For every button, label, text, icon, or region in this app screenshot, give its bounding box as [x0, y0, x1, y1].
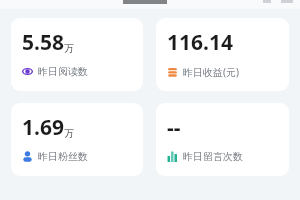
other: 留言次数	[167, 151, 178, 162]
staticText: 昨日粉丝数	[38, 150, 88, 163]
button[interactable]: 5.58	[11, 18, 143, 91]
other: 收益	[167, 67, 178, 78]
staticText: 昨日阅读数	[38, 65, 88, 78]
button[interactable]: --	[156, 103, 289, 176]
staticText: 万	[64, 42, 74, 55]
button[interactable]: 116.14	[156, 18, 289, 91]
other: 粉丝数	[22, 151, 33, 162]
staticText: 昨日留言次数	[183, 150, 243, 163]
other: 阅读数	[22, 66, 33, 77]
staticText: 5.58	[22, 28, 64, 57]
button[interactable]: 1.69	[11, 103, 143, 176]
staticText: 昨日收益(元)	[183, 65, 239, 79]
staticText: 116.14	[167, 28, 233, 57]
staticText: 万	[64, 127, 74, 140]
staticText: 1.69	[22, 113, 64, 142]
staticText: --	[167, 113, 181, 142]
